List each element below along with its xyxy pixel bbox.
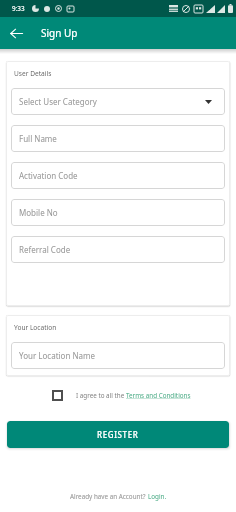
staticText: Select User Category — [19, 96, 97, 107]
staticText: Mobile No — [19, 207, 58, 218]
staticText: Your Location Name — [19, 350, 96, 361]
staticText: Activation Code — [19, 170, 78, 181]
button[interactable]: Full Name — [11, 125, 225, 152]
button[interactable]: Your Location Name — [11, 342, 225, 369]
button[interactable]: Agree to terms — [52, 390, 63, 401]
staticText: Sign Up — [41, 26, 78, 40]
staticText: User Details — [14, 69, 52, 78]
staticText: Already have an Account? — [70, 492, 148, 501]
button[interactable]: Select User Category — [11, 88, 225, 115]
button[interactable]: REGISTER — [7, 421, 229, 448]
button[interactable]: Activation Code — [11, 162, 225, 189]
staticText: Referral Code — [19, 244, 71, 255]
button[interactable]: Back — [0, 17, 32, 49]
staticText: Full Name — [19, 133, 57, 144]
button[interactable]: Referral Code — [11, 236, 225, 263]
button[interactable]: Mobile No — [11, 199, 225, 226]
staticText: 9:33 — [12, 4, 25, 13]
staticText: Your Location — [14, 323, 57, 332]
staticText: I agree to all the — [76, 391, 126, 400]
staticText: REGISTER — [97, 429, 139, 440]
button[interactable]: Login. — [148, 492, 167, 501]
button[interactable]: Terms and Conditions — [126, 391, 191, 400]
